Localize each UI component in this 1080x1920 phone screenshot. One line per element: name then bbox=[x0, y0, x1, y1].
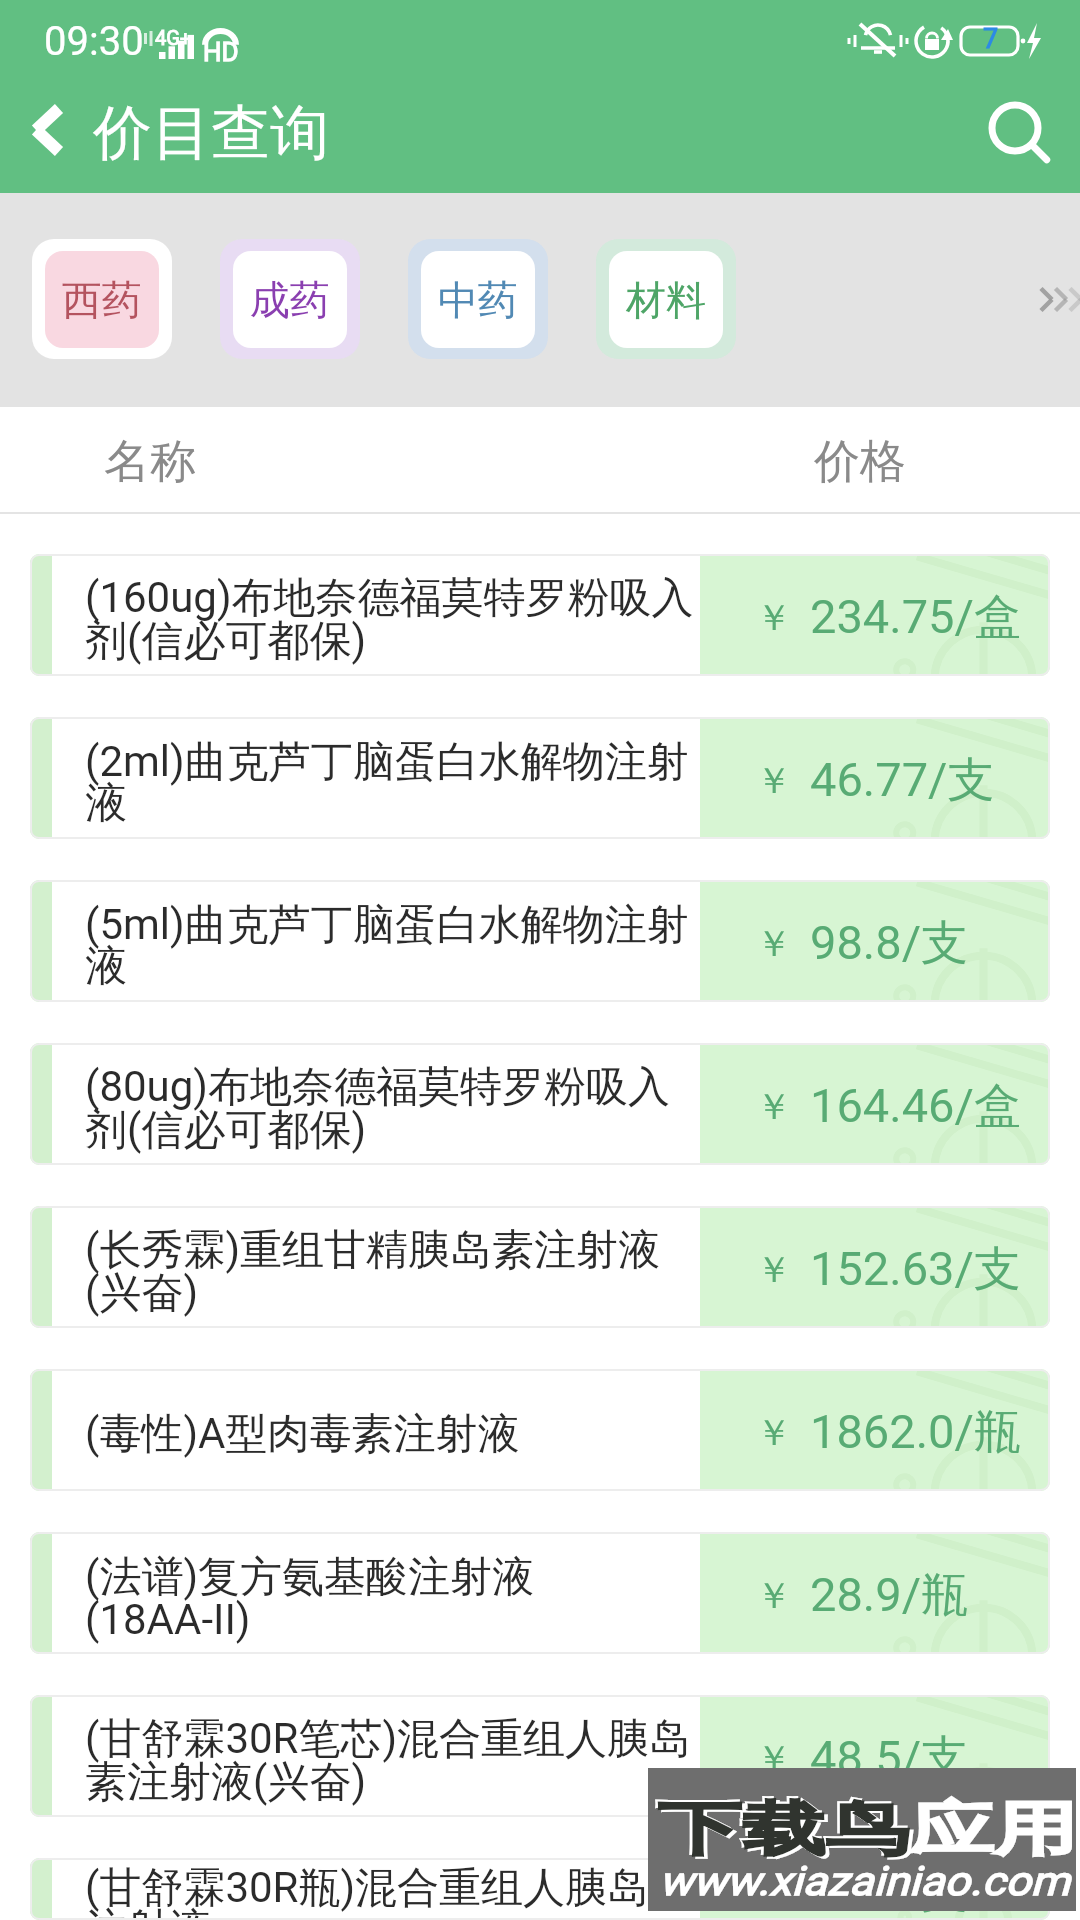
staticText: 下载鸟 bbox=[656, 1791, 908, 1864]
button[interactable]: (80ug)布地奈德福莫特罗粉吸入 剂(信必可都保) bbox=[30, 1043, 1050, 1165]
staticText: www.xiazainiao.com bbox=[659, 1858, 1070, 1905]
staticText: ￥ bbox=[756, 1084, 792, 1129]
staticText: (长秀霖)重组甘精胰岛素注射液 (兴奋) bbox=[85, 1224, 695, 1319]
button[interactable]: (毒性)A型肉毒素注射液 bbox=[30, 1369, 1050, 1491]
staticText: 09:30 bbox=[44, 18, 144, 65]
staticText: (毒性)A型肉毒素注射液 bbox=[85, 1408, 695, 1461]
staticText: 下载鸟 bbox=[658, 1793, 910, 1866]
button[interactable]: (2ml)曲克芦丁脑蛋白水解物注射 液 bbox=[30, 717, 1050, 839]
staticText: 52.7/支 bbox=[810, 1862, 969, 1920]
staticText: ￥ bbox=[756, 921, 792, 966]
button[interactable]: (甘舒霖30R笔芯)混合重组人胰岛 素注射液(兴奋) bbox=[30, 1695, 1050, 1817]
button[interactable]: 西药 bbox=[32, 239, 172, 359]
staticText: ￥ bbox=[756, 1410, 792, 1455]
button[interactable]: 材料 bbox=[596, 239, 736, 359]
staticText: 234.75/盒 bbox=[810, 588, 1021, 647]
staticText: 材料 bbox=[626, 275, 706, 325]
staticText: 成药 bbox=[250, 275, 330, 325]
button[interactable]: Search bbox=[970, 82, 1080, 193]
staticText: ￥ bbox=[756, 1573, 792, 1618]
staticText: 中药 bbox=[438, 275, 518, 325]
staticText: 164.46/盒 bbox=[810, 1077, 1021, 1136]
staticText: 152.63/支 bbox=[810, 1240, 1021, 1299]
staticText: ￥ bbox=[756, 595, 792, 640]
staticText: 98.8/支 bbox=[810, 914, 969, 973]
staticText: ￥ bbox=[756, 1869, 792, 1914]
button[interactable]: 中药 bbox=[408, 239, 548, 359]
staticText: (5ml)曲克芦丁脑蛋白水解物注射 液 bbox=[85, 899, 695, 992]
staticText: ￥ bbox=[756, 758, 792, 803]
button[interactable]: (甘舒霖30R瓶)混合重组人胰岛素 注射液 bbox=[30, 1858, 1050, 1920]
staticText: (80ug)布地奈德福莫特罗粉吸入 剂(信必可都保) bbox=[85, 1061, 695, 1156]
button[interactable]: (5ml)曲克芦丁脑蛋白水解物注射 液 bbox=[30, 880, 1050, 1002]
button[interactable]: (长秀霖)重组甘精胰岛素注射液 (兴奋) bbox=[30, 1206, 1050, 1328]
staticText: 下载鸟 bbox=[662, 1795, 914, 1868]
staticText: (甘舒霖30R笔芯)混合重组人胰岛 素注射液(兴奋) bbox=[85, 1713, 695, 1808]
staticText: 价格 bbox=[814, 433, 906, 491]
staticText: HD bbox=[203, 37, 239, 67]
staticText: 48.5/支 bbox=[810, 1729, 969, 1788]
staticText: 名称 bbox=[104, 433, 196, 491]
staticText: 西药 bbox=[62, 275, 142, 325]
staticText: 价目查询 bbox=[93, 96, 329, 170]
staticText: (2ml)曲克芦丁脑蛋白水解物注射 液 bbox=[85, 736, 695, 829]
staticText: 1862.0/瓶 bbox=[810, 1403, 1021, 1462]
button[interactable]: 成药 bbox=[220, 239, 360, 359]
button[interactable]: Back bbox=[0, 82, 88, 193]
staticText: (160ug)布地奈德福莫特罗粉吸入 剂(信必可都保) bbox=[85, 572, 695, 667]
button[interactable]: (160ug)布地奈德福莫特罗粉吸入 剂(信必可都保) bbox=[30, 554, 1050, 676]
staticText: 46.77/支 bbox=[810, 751, 995, 810]
staticText: 应用 bbox=[910, 1793, 1078, 1866]
staticText: 4G+ bbox=[155, 26, 192, 49]
staticText: (法谱)复方氨基酸注射液 (18AA-II) bbox=[85, 1551, 695, 1644]
staticText: ￥ bbox=[756, 1247, 792, 1292]
staticText: ￥ bbox=[756, 1736, 792, 1781]
staticText: 28.9/瓶 bbox=[810, 1566, 969, 1625]
button[interactable]: (法谱)复方氨基酸注射液 (18AA-II) bbox=[30, 1532, 1050, 1654]
staticText: (甘舒霖30R瓶)混合重组人胰岛素 注射液 bbox=[85, 1862, 695, 1920]
staticText: 7 bbox=[983, 23, 999, 55]
